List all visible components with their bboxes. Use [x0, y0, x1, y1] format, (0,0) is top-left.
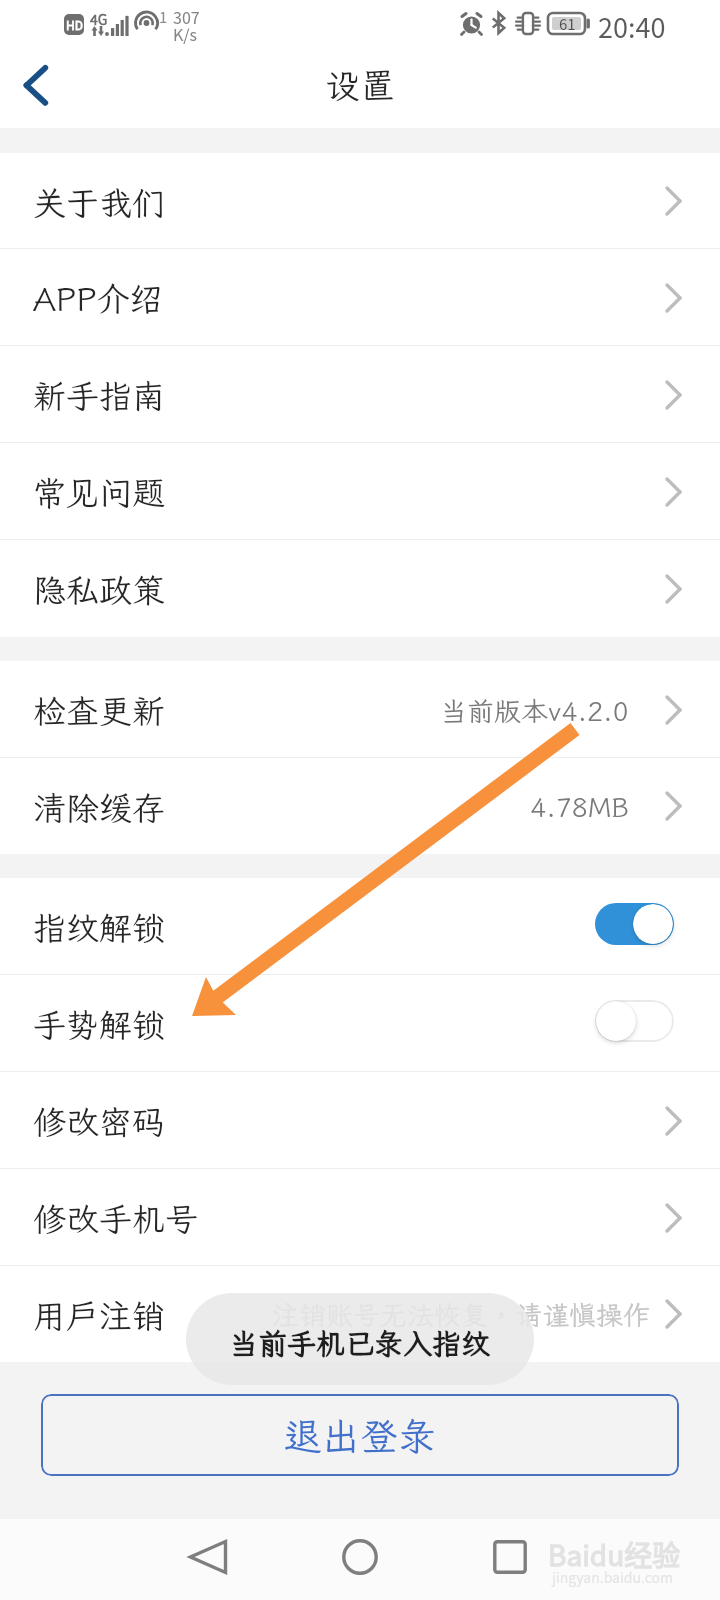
staticText: 307 — [173, 5, 200, 28]
button[interactable]: 手势解锁 — [0, 975, 720, 1072]
staticText: 用户注销 — [33, 1294, 165, 1337]
staticText: 当前手机已录入指纹 — [229, 1324, 491, 1362]
staticText: 注销账号无法恢复，请谨慎操作 — [272, 1297, 650, 1333]
button[interactable]: 隐私政策 — [0, 540, 720, 637]
staticText: 常见问题 — [33, 471, 165, 514]
button[interactable]: 用户注销 — [0, 1266, 720, 1362]
button[interactable]: Recents — [465, 1516, 555, 1597]
staticText: 4G — [90, 9, 108, 29]
staticText: 关于我们 — [33, 181, 165, 224]
staticText: 隐私政策 — [33, 568, 165, 611]
staticText: 设置 — [325, 62, 396, 108]
staticText: K/s — [173, 22, 198, 45]
staticText: 清除缓存 — [33, 786, 165, 829]
staticText: jingyan.baidu.com — [552, 1567, 673, 1587]
staticText: 1 — [159, 6, 168, 28]
staticText: 4.78MB — [530, 789, 629, 825]
button[interactable]: 检查更新 — [0, 661, 720, 758]
button[interactable]: Home — [315, 1516, 405, 1597]
staticText: 修改手机号 — [33, 1197, 198, 1240]
staticText: 退出登录 — [284, 1411, 437, 1461]
staticText: 指纹解锁 — [33, 906, 165, 949]
staticText: 新手指南 — [33, 374, 165, 417]
button[interactable]: 退出登录 — [41, 1394, 679, 1476]
button[interactable]: Back — [0, 53, 72, 125]
staticText: Baidu经验 — [548, 1534, 681, 1575]
button[interactable]: 指纹解锁 — [0, 878, 720, 975]
staticText: 61 — [559, 13, 576, 34]
staticText: 20:40 — [598, 7, 666, 46]
button[interactable]: 新手指南 — [0, 346, 720, 443]
button[interactable]: Toggle off — [595, 1000, 674, 1042]
staticText: 检查更新 — [33, 689, 165, 732]
staticText: HD — [66, 16, 83, 33]
button[interactable]: 修改手机号 — [0, 1169, 720, 1266]
button[interactable]: 清除缓存 — [0, 758, 720, 854]
staticText: 当前版本v4.2.0 — [440, 693, 629, 729]
staticText: APP介绍 — [33, 277, 163, 320]
button[interactable]: 关于我们 — [0, 153, 720, 249]
button[interactable]: Back — [163, 1516, 253, 1597]
staticText: 修改密码 — [33, 1100, 165, 1143]
staticText: 手势解锁 — [33, 1003, 165, 1046]
button[interactable]: 常见问题 — [0, 443, 720, 540]
button[interactable]: APP介绍 — [0, 249, 720, 346]
button[interactable]: Toggle on — [595, 903, 674, 945]
button[interactable]: 修改密码 — [0, 1072, 720, 1169]
